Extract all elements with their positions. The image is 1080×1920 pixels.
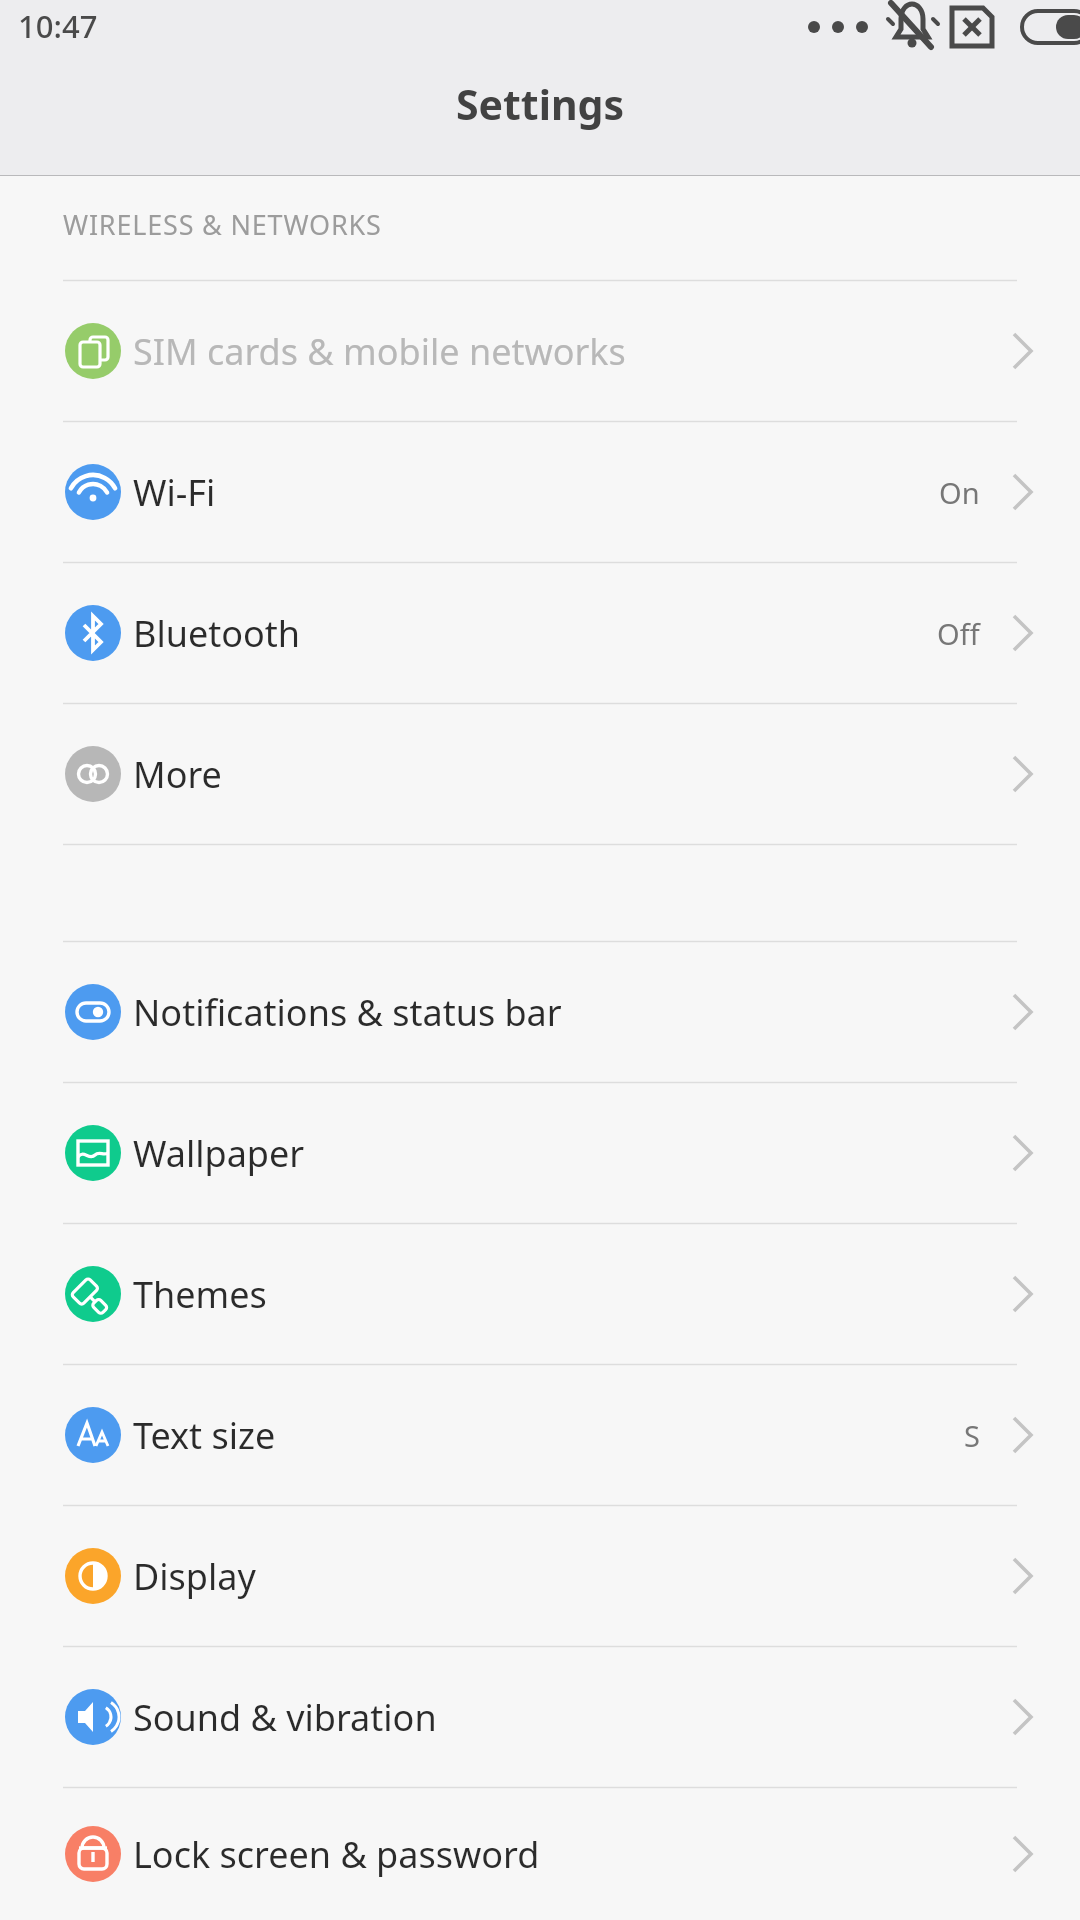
staticText: Wallpaper	[133, 1129, 305, 1178]
staticText: S	[964, 1416, 980, 1455]
staticText: 10:47	[18, 5, 98, 47]
staticText: On	[939, 473, 980, 512]
staticText: Display	[133, 1552, 256, 1601]
button[interactable]: Text size	[0, 1365, 1080, 1505]
button[interactable]: Lock screen & password	[0, 1788, 1080, 1920]
staticText: More	[133, 750, 222, 799]
staticText: Settings	[0, 76, 1080, 132]
button[interactable]: SIM cards & mobile networks	[0, 281, 1080, 421]
button[interactable]: Themes	[0, 1224, 1080, 1364]
staticText: SIM cards & mobile networks	[133, 327, 626, 376]
button[interactable]: Wallpaper	[0, 1083, 1080, 1223]
staticText: Bluetooth	[133, 609, 301, 658]
button[interactable]: Display	[0, 1506, 1080, 1646]
staticText: Wi-Fi	[133, 468, 216, 517]
staticText: WIRELESS & NETWORKS	[63, 206, 382, 243]
staticText: Notifications & status bar	[133, 988, 562, 1037]
staticText: Themes	[133, 1270, 267, 1319]
staticText: Lock screen & password	[133, 1830, 540, 1879]
staticText: Sound & vibration	[133, 1693, 437, 1742]
button[interactable]: Sound & vibration	[0, 1647, 1080, 1787]
staticText: Text size	[133, 1411, 276, 1460]
button[interactable]: Bluetooth	[0, 563, 1080, 703]
button[interactable]: Wi-Fi	[0, 422, 1080, 562]
button[interactable]: Notifications & status bar	[0, 942, 1080, 1082]
button[interactable]: More	[0, 704, 1080, 844]
staticText: Off	[937, 614, 980, 653]
